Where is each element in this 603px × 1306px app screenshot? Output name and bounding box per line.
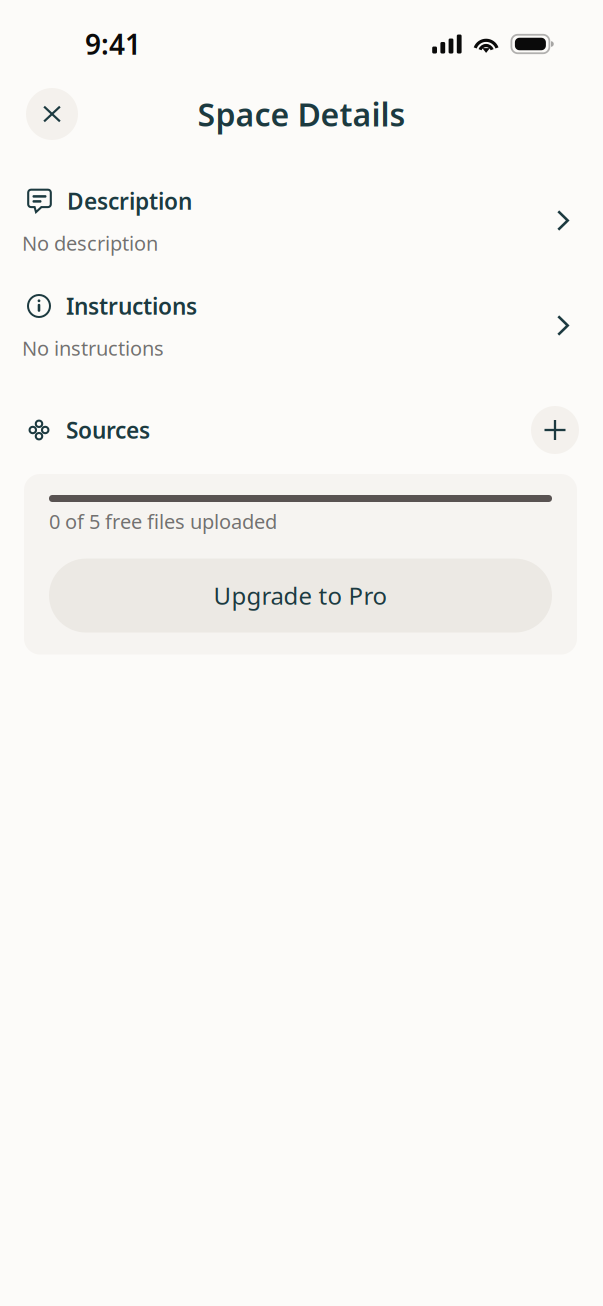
staticText: Space Details [197,93,405,135]
button[interactable]: Description [0,188,603,253]
staticText: No instructions [22,335,164,361]
staticText: 9:41 [85,25,141,63]
staticText: Sources [66,415,150,445]
button[interactable]: Close [26,88,78,140]
staticText: Upgrade to Pro [213,580,387,611]
staticText: Description [67,186,192,216]
staticText: No description [22,230,158,256]
button[interactable]: Add source [531,406,579,454]
staticText: 0 of 5 free files uploaded [49,508,277,535]
button[interactable]: Instructions [0,293,603,358]
staticText: Instructions [66,291,197,321]
button[interactable]: Upgrade to Pro [49,559,552,633]
